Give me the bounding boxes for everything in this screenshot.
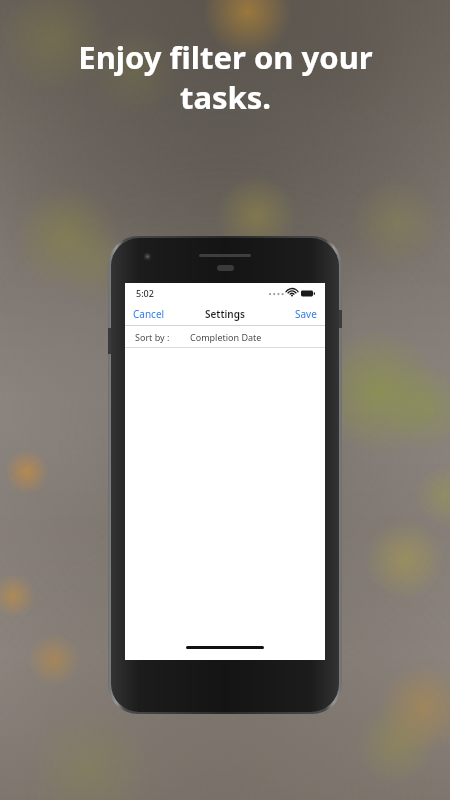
staticText: Enjoy filter on your tasks. [78,36,373,118]
staticText: Settings [205,307,245,321]
button[interactable]: Sort by : [125,326,325,347]
staticText: Sort by : [135,331,170,343]
staticText: Save [295,307,317,321]
button[interactable]: Save [287,304,325,324]
button[interactable]: Cancel [125,304,173,324]
button[interactable]: Settings [201,303,249,325]
staticText: Cancel [133,307,165,321]
other: Home indicator [186,646,264,649]
staticText: Completion Date [190,331,262,343]
staticText: 5:02 [136,287,154,299]
